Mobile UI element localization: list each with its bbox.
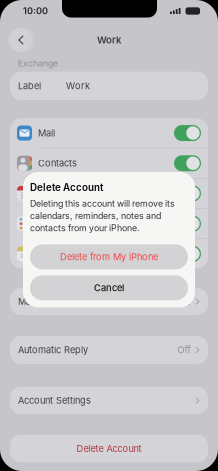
button[interactable]: Notes: [10, 239, 208, 269]
staticText: Mail: [38, 127, 55, 139]
staticText: Work: [66, 80, 90, 91]
staticText: 10:00: [23, 5, 48, 16]
button[interactable]: Calendars: [10, 179, 208, 208]
staticText: Delete Account: [76, 443, 141, 454]
staticText: Account Settings: [18, 395, 91, 406]
staticText: Contacts: [38, 158, 77, 169]
button[interactable]: Account Settings: [10, 387, 208, 414]
button[interactable]: Delete from My iPhone: [30, 244, 188, 269]
staticText: Automatic Reply: [18, 344, 88, 355]
staticText: Cancel: [94, 282, 124, 293]
button[interactable]: Delete Account: [10, 435, 208, 463]
staticText: Calendars: [38, 188, 81, 199]
button[interactable]: Contacts: [10, 148, 208, 178]
button[interactable]: Reminders: [10, 209, 208, 238]
button[interactable]: Mail Days to Sync: [10, 288, 208, 315]
staticText: calendars, reminders, notes and: [30, 210, 161, 221]
staticText: Mail Days to Sync: [18, 296, 96, 307]
staticText: Exchange: [18, 58, 58, 69]
staticText: Notes: [38, 248, 64, 259]
staticText: contacts from your iPhone.: [30, 223, 140, 233]
staticText: Reminders: [38, 218, 83, 229]
button[interactable]: Automatic Reply: [10, 336, 208, 364]
button[interactable]: Label: [10, 72, 208, 100]
button[interactable]: Back: [9, 28, 33, 52]
button[interactable]: Mail: [10, 118, 208, 148]
staticText: Label: [18, 80, 41, 91]
staticText: Delete Account: [30, 181, 103, 193]
staticText: Deleting this account will remove its: [30, 198, 175, 209]
staticText: Off: [177, 344, 190, 355]
staticText: Delete from My iPhone: [60, 251, 158, 262]
button[interactable]: Cancel: [30, 275, 188, 300]
staticText: Work: [97, 34, 121, 46]
staticText: No Limit: [154, 296, 190, 307]
